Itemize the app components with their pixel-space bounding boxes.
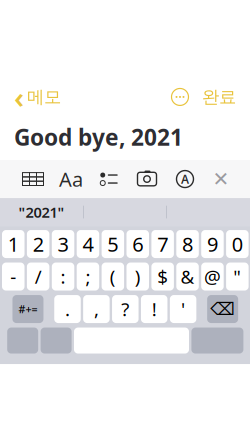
- staticText: 6: [132, 231, 143, 257]
- button[interactable]: ": [226, 263, 249, 291]
- button[interactable]: .: [54, 295, 81, 323]
- staticText: ': [181, 297, 185, 321]
- button[interactable]: Return: [191, 328, 243, 354]
- staticText: -: [10, 264, 16, 289]
- button[interactable]: -: [2, 263, 24, 291]
- staticText: 2: [33, 231, 44, 257]
- staticText: ,: [94, 297, 99, 321]
- staticText: 메모: [27, 86, 61, 108]
- button[interactable]: More: [166, 83, 194, 111]
- staticText: ?: [121, 297, 129, 321]
- button[interactable]: 8: [176, 230, 199, 258]
- staticText: Aa: [59, 166, 83, 192]
- staticText: ;: [85, 264, 90, 289]
- button[interactable]: !: [141, 295, 167, 323]
- button[interactable]: ): [126, 263, 149, 291]
- staticText: Good bye, 2021: [14, 122, 183, 152]
- staticText: 9: [207, 231, 218, 257]
- staticText: ): [135, 264, 141, 289]
- button[interactable]: 7: [151, 230, 174, 258]
- button[interactable]: Emoji: [41, 328, 72, 354]
- button[interactable]: 3: [52, 230, 74, 258]
- staticText: !: [152, 297, 157, 321]
- button[interactable]: ?: [112, 295, 138, 323]
- staticText: @: [204, 264, 221, 289]
- button[interactable]: ;: [77, 263, 99, 291]
- button[interactable]: 1: [2, 230, 24, 258]
- button[interactable]: Camera: [128, 164, 166, 194]
- button[interactable]: Delete: [207, 295, 238, 323]
- button[interactable]: 2: [27, 230, 49, 258]
- button[interactable]: 9: [201, 230, 224, 258]
- staticText: 0: [232, 231, 243, 257]
- button[interactable]: 5: [102, 230, 124, 258]
- staticText: ⌫: [210, 299, 235, 319]
- staticText: .: [65, 297, 70, 321]
- staticText: 5: [107, 231, 118, 257]
- staticText: A: [181, 171, 189, 187]
- staticText: 7: [157, 231, 168, 257]
- staticText: 1: [8, 231, 19, 257]
- button[interactable]: 0: [226, 230, 249, 258]
- staticText: #+=: [18, 302, 37, 316]
- button[interactable]: &: [176, 263, 199, 291]
- staticText: $: [157, 264, 168, 289]
- button[interactable]: 4: [77, 230, 99, 258]
- button[interactable]: Checklist: [90, 164, 128, 194]
- button[interactable]: ABC: [7, 328, 38, 354]
- button[interactable]: @: [201, 263, 224, 291]
- staticText: (: [110, 264, 116, 289]
- button[interactable]: "2021": [0, 198, 83, 226]
- staticText: 3: [57, 231, 68, 257]
- staticText: "2021": [18, 202, 64, 222]
- button[interactable]: Format: [52, 164, 90, 194]
- button[interactable]: (: [102, 263, 124, 291]
- staticText: /: [35, 264, 42, 289]
- button[interactable]: 6: [126, 230, 149, 258]
- staticText: ": [233, 264, 241, 289]
- staticText: ✕: [212, 168, 229, 190]
- button[interactable]: ‹: [6, 82, 69, 112]
- button[interactable]: #+=: [12, 295, 43, 323]
- staticText: ‹: [14, 77, 24, 116]
- button[interactable]: 완료: [194, 82, 244, 112]
- button[interactable]: ,: [83, 295, 110, 323]
- button[interactable]: :: [52, 263, 74, 291]
- staticText: :: [60, 264, 65, 289]
- button[interactable]: ': [170, 295, 196, 323]
- staticText: &: [181, 264, 195, 289]
- button[interactable]: Space: [74, 328, 189, 354]
- button[interactable]: /: [27, 263, 49, 291]
- button[interactable]: Markup: [166, 164, 204, 194]
- button[interactable]: $: [151, 263, 174, 291]
- staticText: 4: [82, 231, 93, 257]
- staticText: 완료: [202, 86, 236, 108]
- button[interactable]: Table: [14, 164, 52, 194]
- button[interactable]: Close: [204, 164, 238, 194]
- staticText: 8: [182, 231, 193, 257]
